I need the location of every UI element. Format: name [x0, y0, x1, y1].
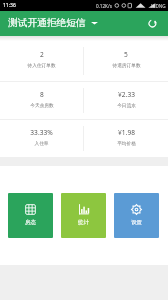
button[interactable]: 5 [84, 41, 168, 81]
staticText: 测试开通拒绝短信 [8, 17, 86, 29]
button[interactable]: ¥2.33 [84, 82, 168, 119]
button[interactable]: 2 [0, 41, 83, 81]
staticText: 待退房订单数 [112, 62, 141, 68]
button[interactable]: 房态 [8, 193, 53, 238]
staticText: KIDNG [151, 3, 166, 9]
staticText: 今日流水 [117, 102, 136, 108]
button[interactable]: Refresh [145, 16, 159, 30]
staticText: 2 [40, 50, 44, 59]
staticText: 待入住订单数 [27, 62, 56, 68]
staticText: 33.33% [30, 128, 53, 137]
button[interactable]: 设置 [114, 193, 159, 238]
button[interactable]: 33.33% [0, 120, 83, 157]
staticText: 今天余房数 [30, 102, 54, 108]
staticText: 8 [40, 90, 44, 99]
staticText: ¥2.33 [118, 90, 135, 99]
button[interactable]: 8 [0, 82, 83, 119]
staticText: ¥1.98 [118, 128, 135, 137]
staticText: 房态 [25, 219, 36, 226]
button[interactable]: ¥1.98 [84, 120, 168, 157]
button[interactable]: 统计 [61, 193, 106, 238]
staticText: 0.12K/s [96, 3, 112, 9]
staticText: 5 [124, 50, 128, 59]
button[interactable]: 测试开通拒绝短信 [8, 17, 98, 29]
staticText: 入住率 [34, 140, 49, 146]
staticText: 平均价格 [117, 140, 136, 146]
staticText: 统计 [78, 219, 89, 226]
staticText: 11:36 [3, 2, 16, 9]
staticText: 设置 [131, 219, 142, 226]
